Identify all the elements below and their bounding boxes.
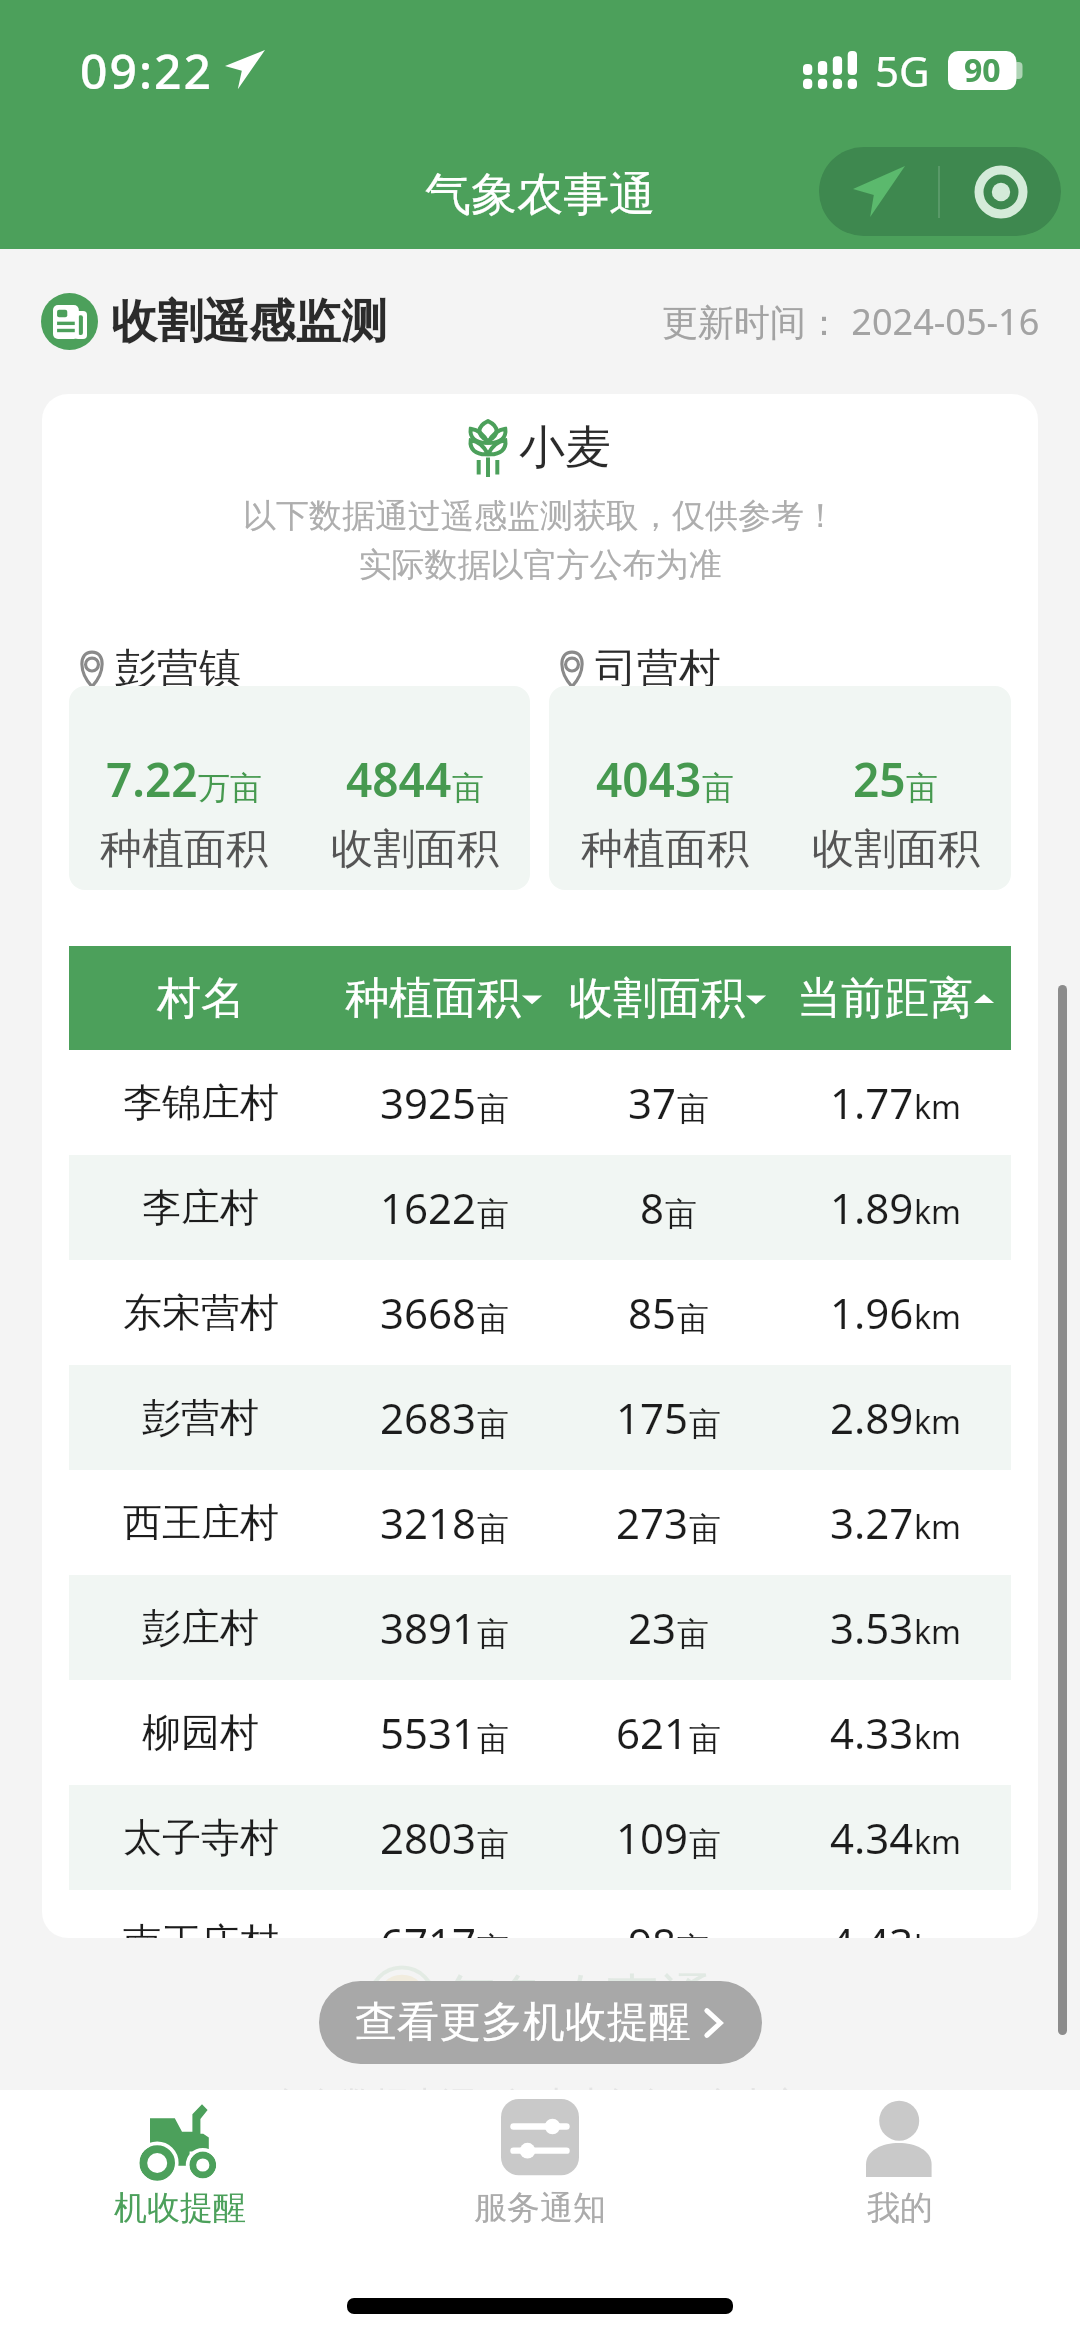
staticText: 亩 (477, 1404, 509, 1444)
staticText: 查看更多机收提醒 (355, 1996, 691, 2049)
staticText: 南王庄村 (123, 1918, 279, 1938)
staticText: 种植面积 (345, 971, 521, 1026)
staticText: 亩 (689, 1824, 721, 1864)
staticText: 8 (640, 1179, 665, 1236)
staticText: 5531 (380, 1704, 477, 1761)
staticText: 以下数据通过遥感监测获取，仅供参考！ 实际数据以官方公布为准 (42, 495, 1038, 586)
staticText: 西王庄村 (123, 1498, 279, 1547)
staticText: 亩 (477, 1299, 509, 1339)
staticText: 亩 (477, 1509, 509, 1549)
button[interactable]: 查看更多机收提醒 (319, 1981, 762, 2064)
staticText: 7.22 (106, 748, 198, 811)
staticText: 小麦 (519, 419, 611, 477)
button[interactable]: 东宋营村 (69, 1260, 1011, 1365)
staticText: 亩 (477, 1194, 509, 1234)
staticText: 气象农事通 (425, 166, 655, 224)
staticText: 1622 (380, 1179, 477, 1236)
staticText: 收割面积 (812, 823, 980, 876)
button[interactable]: 我的 (720, 2090, 1080, 2238)
staticText: 彭营村 (142, 1393, 259, 1442)
staticText: km (914, 1400, 962, 1444)
staticText: 3668 (380, 1284, 477, 1341)
staticText: 李庄村 (142, 1183, 259, 1232)
staticText: km (914, 1820, 962, 1864)
staticText: 98 (628, 1914, 677, 1938)
staticText: 彭庄村 (142, 1603, 259, 1652)
staticText: 175 (616, 1389, 689, 1446)
staticText: 东宋营村 (123, 1288, 279, 1337)
staticText: 1.77 (830, 1074, 914, 1131)
staticText: 25 (853, 748, 906, 811)
button[interactable]: 柳园村 (69, 1680, 1011, 1785)
staticText: 5G (875, 42, 930, 99)
staticText: 更新时间： 2024-05-16 (662, 297, 1040, 346)
button[interactable]: 南王庄村 (69, 1890, 1011, 1938)
staticText: 亩 (702, 768, 734, 808)
staticText: （气象数据来源：河南省气象服务中心） (243, 2083, 837, 2125)
staticText: 亩 (677, 1089, 709, 1129)
staticText: 3.53 (830, 1599, 914, 1656)
staticText: 太子寺村 (123, 1813, 279, 1862)
staticText: 我的 (867, 2187, 933, 2229)
staticText: km (914, 1610, 962, 1654)
staticText: 柳园村 (142, 1708, 259, 1757)
staticText: 亩 (477, 1614, 509, 1654)
staticText: km (914, 1925, 962, 1938)
staticText: 当前距离 (797, 971, 973, 1026)
staticText: 3218 (380, 1494, 477, 1551)
staticText: 机收提醒 (114, 2187, 246, 2229)
staticText: 彭营镇 (115, 643, 241, 696)
staticText: 4.43 (830, 1914, 914, 1938)
button[interactable]: 机收提醒 (0, 2090, 360, 2238)
staticText: 6717 (380, 1914, 477, 1938)
staticText: 村名 (157, 971, 245, 1026)
staticText: 万亩 (198, 768, 262, 808)
button[interactable]: 彭营村 (69, 1365, 1011, 1470)
staticText: 2683 (380, 1389, 477, 1446)
staticText: 种植面积 (100, 823, 268, 876)
staticText: 种植面积 (581, 823, 749, 876)
button[interactable]: 西王庄村 (69, 1470, 1011, 1575)
staticText: 4.33 (830, 1704, 914, 1761)
button[interactable]: 李庄村 (69, 1155, 1011, 1260)
staticText: 亩 (477, 1929, 509, 1938)
staticText: 亩 (477, 1719, 509, 1759)
staticText: 37 (628, 1074, 677, 1131)
staticText: 亩 (477, 1089, 509, 1129)
staticText: 2.89 (830, 1389, 914, 1446)
staticText: 亩 (677, 1929, 709, 1938)
button[interactable]: 定位 (819, 147, 1061, 236)
staticText: km (914, 1715, 962, 1759)
staticText: 亩 (689, 1509, 721, 1549)
staticText: 李锦庄村 (123, 1078, 279, 1127)
staticText: 3891 (380, 1599, 477, 1656)
staticText: 3925 (380, 1074, 477, 1131)
staticText: 23 (628, 1599, 677, 1656)
staticText: 2803 (380, 1809, 477, 1866)
staticText: 1.89 (830, 1179, 914, 1236)
staticText: 服务通知 (474, 2187, 606, 2229)
staticText: 亩 (906, 768, 938, 808)
staticText: km (914, 1505, 962, 1549)
button[interactable]: 太子寺村 (69, 1785, 1011, 1890)
staticText: 收割面积 (569, 971, 745, 1026)
button[interactable]: 彭庄村 (69, 1575, 1011, 1680)
staticText: 273 (616, 1494, 689, 1551)
staticText: 85 (628, 1284, 677, 1341)
staticText: 621 (616, 1704, 689, 1761)
staticText: 司营村 (595, 643, 721, 696)
staticText: 气象农事通 (444, 1966, 714, 2034)
button[interactable]: 服务通知 (360, 2090, 720, 2238)
staticText: 90 (964, 48, 1001, 92)
staticText: 109 (616, 1809, 689, 1866)
staticText: 亩 (689, 1719, 721, 1759)
staticText: 亩 (677, 1299, 709, 1339)
staticText: 4844 (346, 748, 452, 811)
staticText: 3.27 (830, 1494, 914, 1551)
staticText: 亩 (665, 1194, 697, 1234)
button[interactable]: 李锦庄村 (69, 1050, 1011, 1155)
staticText: km (914, 1295, 962, 1339)
staticText: km (914, 1085, 962, 1129)
staticText: 亩 (477, 1824, 509, 1864)
staticText: 亩 (689, 1404, 721, 1444)
